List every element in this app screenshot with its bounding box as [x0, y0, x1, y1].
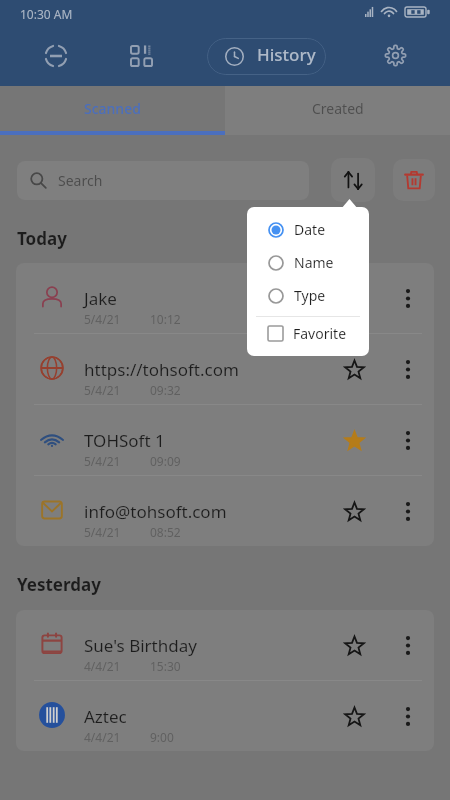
button[interactable]: Scan	[34, 25, 77, 86]
button[interactable]: Settings	[373, 25, 417, 86]
button[interactable]: Favorite	[328, 610, 381, 680]
staticText: info@tohsoft.com	[84, 500, 227, 523]
button[interactable]: Sort	[331, 158, 375, 202]
staticText: 9:00	[150, 729, 174, 745]
button[interactable]: More options	[381, 334, 434, 404]
button[interactable]: Name	[247, 246, 369, 279]
staticText: Date	[294, 220, 326, 239]
staticText: History	[257, 43, 316, 66]
staticText: 15:30	[150, 658, 181, 674]
button[interactable]: Search	[17, 161, 309, 200]
button[interactable]: More options	[381, 405, 434, 475]
button[interactable]: info@tohsoft.com	[16, 476, 434, 546]
staticText: Yesterday	[17, 573, 101, 596]
staticText: Aztec	[84, 705, 127, 728]
staticText: 5/4/21	[84, 311, 150, 327]
button[interactable]: https://tohsoft.com	[16, 334, 434, 404]
staticText: 09:09	[150, 453, 181, 469]
staticText: 08:52	[150, 524, 181, 540]
button[interactable]: Jake	[16, 263, 434, 333]
button[interactable]: History	[207, 38, 326, 75]
staticText: Created	[312, 99, 364, 118]
button[interactable]: TOHSoft 1	[16, 405, 434, 475]
button[interactable]: More options	[381, 610, 434, 680]
staticText: 5/4/21	[84, 382, 150, 398]
staticText: 5/4/21	[84, 453, 150, 469]
staticText: Scanned	[84, 99, 141, 118]
button[interactable]: Delete all	[393, 159, 435, 201]
staticText: Jake	[84, 287, 117, 310]
button[interactable]: Favorite	[328, 476, 381, 546]
staticText: 10:30 AM	[20, 6, 73, 22]
button[interactable]: More options	[381, 681, 434, 751]
button[interactable]: Type	[247, 279, 369, 312]
staticText: Type	[294, 286, 326, 305]
button[interactable]: More options	[381, 476, 434, 546]
button[interactable]: Favorite	[328, 334, 381, 404]
button[interactable]: More options	[381, 263, 434, 333]
button[interactable]: Aztec	[16, 681, 434, 751]
staticText: Search	[58, 171, 103, 190]
staticText: Name	[294, 253, 334, 272]
button[interactable]: Sue's Birthday	[16, 610, 434, 680]
staticText: 5/4/21	[84, 524, 150, 540]
button[interactable]: Favorite	[328, 405, 381, 475]
staticText: Today	[17, 227, 67, 250]
staticText: 09:32	[150, 382, 181, 398]
staticText: TOHSoft 1	[84, 429, 165, 452]
button[interactable]: Date	[247, 213, 369, 246]
button[interactable]: Favorite	[328, 263, 381, 333]
staticText: 4/4/21	[84, 729, 150, 745]
button[interactable]: My QR codes	[120, 25, 163, 86]
button[interactable]: Scanned	[0, 86, 225, 131]
button[interactable]: Created	[225, 86, 450, 131]
button[interactable]: Favorite	[247, 317, 369, 350]
button[interactable]: Favorite	[328, 681, 381, 751]
staticText: https://tohsoft.com	[84, 358, 239, 381]
staticText: 4/4/21	[84, 658, 150, 674]
staticText: Favorite	[293, 324, 347, 343]
staticText: Sue's Birthday	[84, 634, 197, 657]
staticText: 10:12	[150, 311, 181, 327]
